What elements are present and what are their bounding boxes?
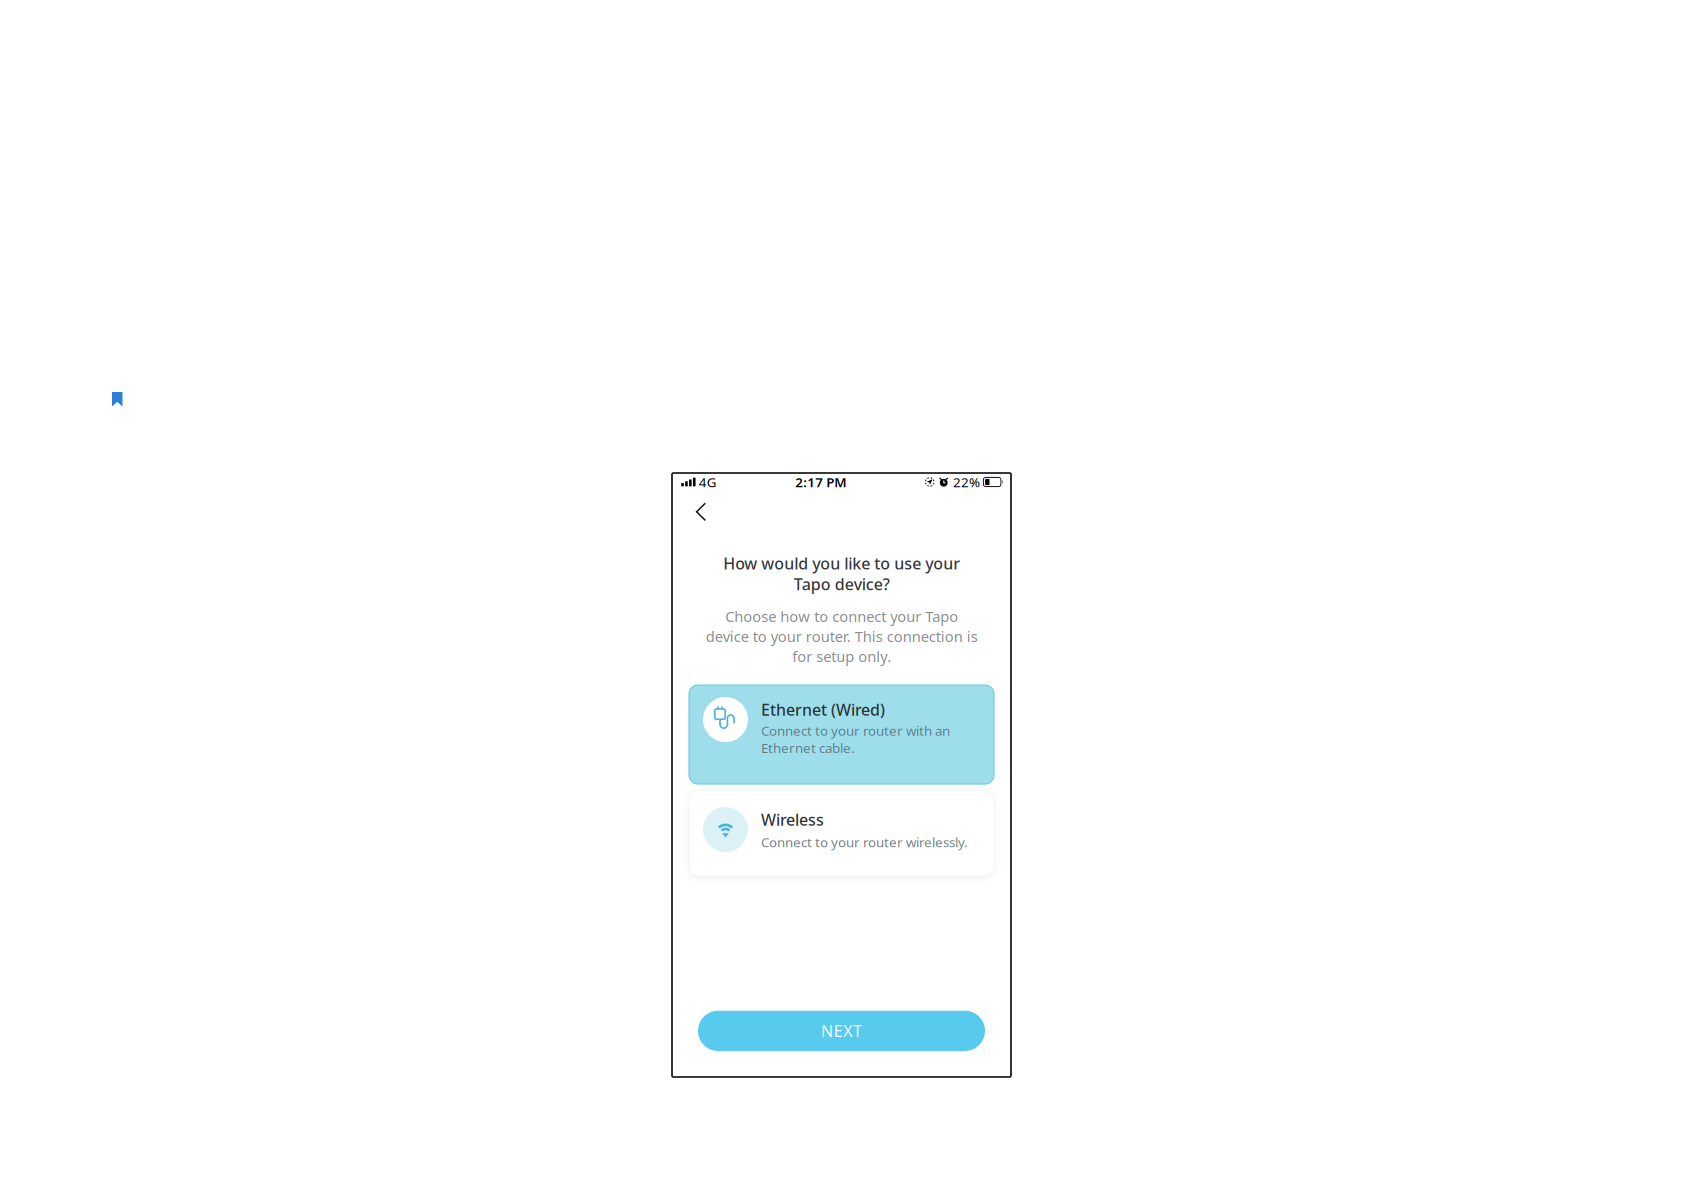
staticText: Connect to your router with an Ethernet … <box>761 722 950 757</box>
button[interactable]: Ethernet (Wired) <box>689 685 994 784</box>
staticText: Ethernet (Wired) <box>761 699 885 720</box>
staticText: Connect to your router wirelessly. <box>761 833 968 851</box>
staticText: Wireless <box>761 809 824 830</box>
staticText: 2:17 PM <box>795 473 846 491</box>
staticText: NEXT <box>821 1020 862 1041</box>
staticText: Choose how to connect your Tapo device t… <box>705 607 977 666</box>
button[interactable]: NEXT <box>698 1011 985 1051</box>
staticText: 4G <box>699 473 717 491</box>
button[interactable]: Back <box>684 495 718 529</box>
button[interactable]: Bookmark <box>112 392 122 406</box>
button[interactable]: Wireless <box>689 790 994 876</box>
staticText: How would you like to use your Tapo devi… <box>723 553 960 595</box>
staticText: 22% <box>953 473 980 491</box>
